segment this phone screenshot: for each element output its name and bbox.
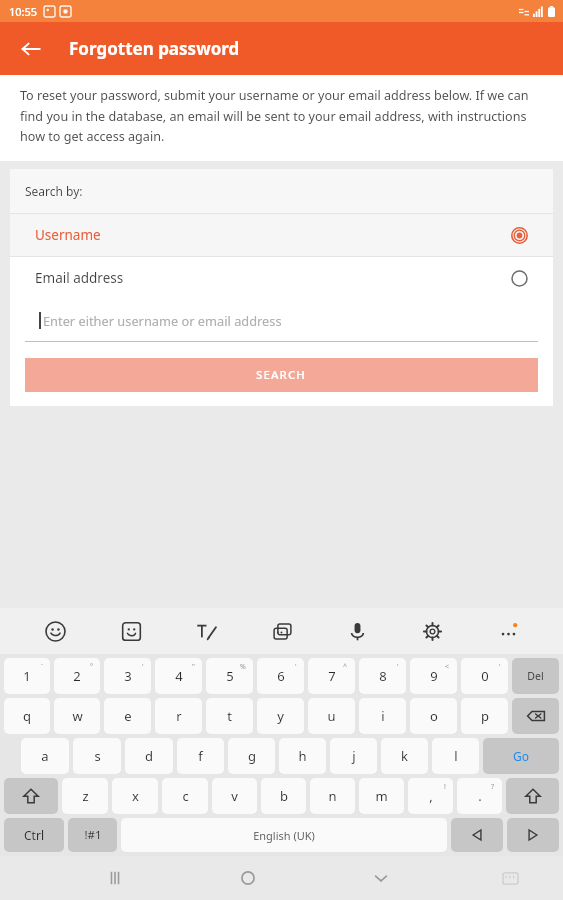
button[interactable]: 1 bbox=[4, 658, 50, 694]
button[interactable]: Ctrl bbox=[4, 818, 64, 852]
button[interactable]: 9 bbox=[410, 658, 457, 694]
button[interactable]: Voice input bbox=[337, 611, 377, 651]
button[interactable]: 6 bbox=[257, 658, 304, 694]
button[interactable]: s bbox=[73, 738, 121, 774]
button[interactable]: i bbox=[359, 698, 406, 734]
button[interactable]: l bbox=[432, 738, 479, 774]
staticText: ' bbox=[397, 662, 399, 672]
button[interactable]: Clipboard bbox=[262, 611, 302, 651]
button[interactable]: c bbox=[162, 778, 208, 814]
staticText: w bbox=[72, 707, 83, 725]
button[interactable]: English (UK) bbox=[121, 818, 447, 852]
button[interactable]: v bbox=[212, 778, 257, 814]
staticText: 7 bbox=[328, 667, 336, 685]
staticText: y bbox=[277, 707, 284, 725]
button[interactable]: t bbox=[206, 698, 253, 734]
staticText: ° bbox=[90, 662, 93, 672]
staticText: 10:55 bbox=[9, 4, 38, 19]
button[interactable]: Recent apps bbox=[93, 856, 137, 900]
button[interactable]: b bbox=[261, 778, 306, 814]
button[interactable]: 4 bbox=[155, 658, 202, 694]
button[interactable]: 0 bbox=[461, 658, 508, 694]
button[interactable]: Enter either username or email address bbox=[10, 299, 553, 341]
button[interactable]: d bbox=[125, 738, 173, 774]
staticText: !#1 bbox=[84, 827, 102, 843]
button[interactable]: 7 bbox=[308, 658, 355, 694]
staticText: 6 bbox=[277, 667, 285, 685]
button[interactable]: k bbox=[381, 738, 428, 774]
button[interactable]: Stickers bbox=[111, 611, 151, 651]
button[interactable]: right bbox=[507, 818, 559, 852]
staticText: Search by: bbox=[25, 183, 83, 199]
staticText: c bbox=[182, 787, 189, 805]
button[interactable]: h bbox=[279, 738, 326, 774]
button[interactable]: z bbox=[62, 778, 108, 814]
staticText: ` bbox=[41, 662, 43, 672]
button[interactable]: Home bbox=[226, 856, 270, 900]
button[interactable]: e bbox=[104, 698, 151, 734]
button[interactable]: shift bbox=[506, 778, 559, 814]
staticText: , bbox=[429, 787, 433, 805]
staticText: j bbox=[352, 747, 356, 765]
button[interactable]: w bbox=[54, 698, 100, 734]
button[interactable]: Handwriting bbox=[186, 611, 226, 651]
button[interactable]: Hide keyboard bbox=[359, 856, 403, 900]
staticText: s bbox=[94, 747, 101, 765]
button[interactable]: 3 bbox=[104, 658, 151, 694]
button[interactable]: m bbox=[359, 778, 404, 814]
button[interactable]: Emoji bbox=[35, 611, 75, 651]
button[interactable]: y bbox=[257, 698, 304, 734]
button[interactable]: !#1 bbox=[68, 818, 117, 852]
button[interactable]: f bbox=[177, 738, 224, 774]
button[interactable]: q bbox=[4, 698, 50, 734]
button[interactable]: Change keyboard bbox=[488, 856, 532, 900]
button[interactable]: Username bbox=[10, 214, 553, 256]
button[interactable]: p bbox=[461, 698, 508, 734]
staticText: m bbox=[375, 787, 388, 805]
button[interactable]: Settings bbox=[412, 611, 452, 651]
button[interactable]: , bbox=[408, 778, 453, 814]
button[interactable]: n bbox=[310, 778, 355, 814]
button[interactable]: u bbox=[308, 698, 355, 734]
button[interactable]: Back bbox=[10, 28, 52, 70]
staticText: ^ bbox=[343, 662, 348, 672]
staticText: q bbox=[23, 707, 31, 725]
button[interactable]: 5 bbox=[206, 658, 253, 694]
staticText: k bbox=[401, 747, 408, 765]
button[interactable]: a bbox=[21, 738, 69, 774]
button[interactable]: Email address bbox=[10, 257, 553, 299]
button[interactable]: Del bbox=[512, 658, 559, 694]
staticText: . bbox=[478, 787, 482, 805]
staticText: o bbox=[430, 707, 438, 725]
button[interactable]: Go bbox=[483, 738, 559, 774]
button[interactable]: backspace bbox=[512, 698, 559, 734]
button[interactable]: shift bbox=[4, 778, 58, 814]
button[interactable]: j bbox=[330, 738, 377, 774]
staticText: Go bbox=[513, 748, 529, 764]
staticText: d bbox=[145, 747, 153, 765]
staticText: ? bbox=[491, 782, 495, 792]
staticText: p bbox=[481, 707, 489, 725]
button[interactable]: g bbox=[228, 738, 275, 774]
staticText: Enter either username or email address bbox=[43, 312, 282, 329]
staticText: Email address bbox=[35, 269, 124, 287]
staticText: b bbox=[280, 787, 288, 805]
button[interactable]: x bbox=[112, 778, 158, 814]
staticText: i bbox=[381, 707, 385, 725]
button[interactable]: 2 bbox=[54, 658, 100, 694]
button[interactable]: o bbox=[410, 698, 457, 734]
button[interactable]: SEARCH bbox=[25, 358, 538, 392]
staticText: SEARCH bbox=[256, 367, 307, 383]
button[interactable]: r bbox=[155, 698, 202, 734]
staticText: 9 bbox=[430, 667, 438, 685]
staticText: 3 bbox=[124, 667, 132, 685]
staticText: n bbox=[328, 787, 337, 805]
button[interactable]: 8 bbox=[359, 658, 406, 694]
button[interactable]: left bbox=[451, 818, 503, 852]
button[interactable]: . bbox=[457, 778, 502, 814]
staticText: x bbox=[132, 787, 139, 805]
button[interactable]: More options bbox=[488, 611, 528, 651]
staticText: u bbox=[327, 707, 336, 725]
staticText: Forgotten password bbox=[69, 37, 240, 60]
staticText: " bbox=[192, 662, 195, 672]
